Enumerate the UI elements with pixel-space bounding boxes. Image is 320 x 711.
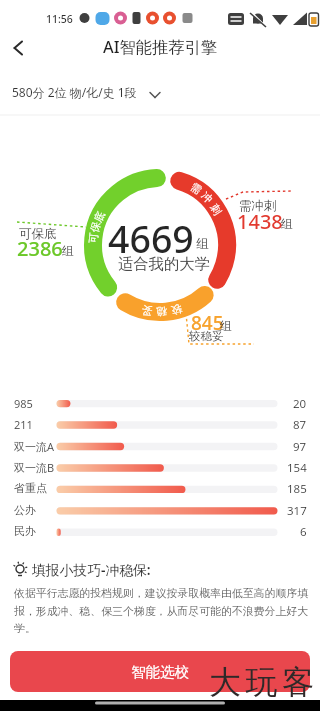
staticText: AI智能推荐引擎 bbox=[103, 36, 218, 58]
staticText: 底 bbox=[91, 209, 108, 224]
staticText: 冲 bbox=[198, 189, 215, 206]
button[interactable] bbox=[8, 36, 32, 60]
button[interactable]: 智能选校 bbox=[10, 651, 310, 692]
staticText: 省重点 bbox=[14, 481, 47, 495]
staticText: 适合我的大学 bbox=[118, 254, 210, 273]
staticText: 317 bbox=[287, 503, 307, 519]
staticText: 依据平行志愿的投档规则，建议按录取概率由低至高的顺序填 报，形成冲、稳、保三个梯… bbox=[14, 587, 309, 635]
staticText: 保 bbox=[88, 220, 103, 234]
staticText: 185 bbox=[287, 481, 307, 497]
staticText: 大玩客 bbox=[209, 662, 319, 702]
staticText: 双一流B bbox=[14, 460, 55, 475]
staticText: 87 bbox=[293, 417, 307, 433]
staticText: 2386 bbox=[17, 235, 63, 262]
staticText: 需 bbox=[188, 180, 204, 197]
staticText: 845 bbox=[191, 310, 224, 336]
staticText: 1438 bbox=[237, 208, 283, 235]
staticText: 刺 bbox=[207, 201, 224, 218]
staticText: 组 bbox=[62, 243, 74, 258]
staticText: 填报小技巧-冲稳保: bbox=[32, 560, 151, 579]
staticText: 妥 bbox=[140, 303, 153, 318]
staticText: 可 bbox=[86, 231, 101, 244]
staticText: 较 bbox=[169, 302, 183, 317]
staticText: 组 bbox=[281, 216, 293, 231]
staticText: 智能选校 bbox=[131, 663, 189, 681]
staticText: 双一流A bbox=[14, 439, 55, 454]
staticText: 民办 bbox=[14, 524, 36, 538]
button[interactable]: 580分 2位 物/化/史 1段 bbox=[12, 84, 137, 100]
staticText: 154 bbox=[287, 460, 307, 476]
staticText: 稳 bbox=[156, 305, 167, 318]
staticText: 97 bbox=[293, 439, 307, 455]
staticText: 可保底 bbox=[19, 226, 57, 242]
staticText: 985 bbox=[14, 396, 33, 411]
staticText: 4669 bbox=[108, 213, 194, 264]
staticText: 6 bbox=[300, 524, 307, 540]
staticText: 需冲刺 bbox=[239, 198, 277, 214]
staticText: 11:56 bbox=[46, 12, 73, 26]
staticText: 较稳妥 bbox=[189, 329, 224, 343]
staticText: 公办 bbox=[14, 503, 36, 517]
staticText: 580分 2位 物/化/史 1段 bbox=[12, 84, 137, 100]
staticText: 组 bbox=[220, 318, 232, 333]
staticText: 20 bbox=[293, 396, 307, 412]
staticText: 211 bbox=[14, 417, 33, 432]
staticText: 组 bbox=[196, 236, 209, 252]
